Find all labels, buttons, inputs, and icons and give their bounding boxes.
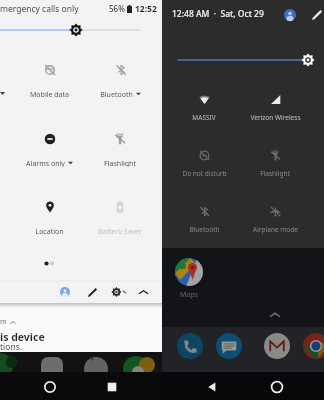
staticText: Bluetooth bbox=[100, 90, 133, 98]
button[interactable]: Collapse bbox=[133, 282, 153, 302]
staticText: Verizon Wireless bbox=[250, 113, 301, 122]
button[interactable]: Brightness bbox=[162, 52, 324, 68]
button[interactable]: Verizon Wireless bbox=[242, 94, 308, 126]
button[interactable]: Edit tiles bbox=[82, 282, 102, 302]
staticText: MASSIV bbox=[192, 113, 216, 122]
button[interactable]: User account bbox=[55, 282, 75, 302]
button[interactable]: Mobile data bbox=[15, 64, 83, 98]
button[interactable]: Open app drawer bbox=[268, 308, 282, 322]
button[interactable]: Alarms only bbox=[15, 133, 83, 167]
button[interactable]: Back bbox=[203, 378, 221, 396]
staticText: mergency calls only bbox=[0, 3, 79, 15]
staticText: Battery Saver bbox=[98, 227, 142, 235]
button[interactable]: MASSIV bbox=[171, 94, 237, 126]
button[interactable]: Flashlight bbox=[242, 150, 308, 182]
button[interactable]: Home bbox=[268, 378, 286, 396]
staticText: Alarms only bbox=[26, 159, 65, 167]
button[interactable]: Battery Saver bbox=[86, 201, 154, 235]
staticText: Maps bbox=[180, 290, 198, 300]
button[interactable]: Maps bbox=[175, 258, 203, 300]
button[interactable]: Flashlight bbox=[86, 133, 154, 167]
button[interactable]: Location bbox=[15, 201, 83, 235]
button[interactable]: User account bbox=[280, 5, 299, 24]
staticText: Do not disturb bbox=[182, 169, 227, 178]
staticText: 12:48 AM · Sat, Oct 29 bbox=[172, 8, 264, 20]
button[interactable]: Chrome bbox=[303, 333, 324, 359]
staticText: 56% bbox=[109, 3, 125, 14]
staticText: Mobile data bbox=[30, 90, 69, 98]
button[interactable]: Bluetooth bbox=[86, 64, 154, 98]
button[interactable]: Brightness bbox=[0, 20, 162, 42]
button[interactable]: Do not disturb bbox=[171, 150, 237, 182]
staticText: Flashlight bbox=[260, 169, 290, 178]
button[interactable]: Recent apps bbox=[103, 378, 121, 396]
staticText: Airplane mode bbox=[253, 225, 298, 234]
button[interactable]: Settings bbox=[108, 282, 128, 302]
button[interactable]: Phone bbox=[177, 333, 203, 359]
button[interactable]: Edit tiles bbox=[307, 5, 324, 24]
staticText: 12:52 bbox=[135, 3, 157, 15]
staticText: is device bbox=[0, 330, 45, 344]
staticText: tions. bbox=[0, 341, 23, 353]
staticText: Flashlight bbox=[104, 159, 136, 167]
button[interactable]: Bluetooth bbox=[171, 206, 237, 238]
button[interactable]: Airplane mode bbox=[242, 206, 308, 238]
staticText: Location bbox=[35, 227, 64, 235]
button[interactable]: Gmail bbox=[264, 333, 290, 359]
staticText: m bbox=[0, 317, 7, 327]
button[interactable]: Home bbox=[41, 378, 59, 396]
button[interactable]: Messages bbox=[216, 333, 242, 359]
staticText: Bluetooth bbox=[189, 225, 220, 234]
